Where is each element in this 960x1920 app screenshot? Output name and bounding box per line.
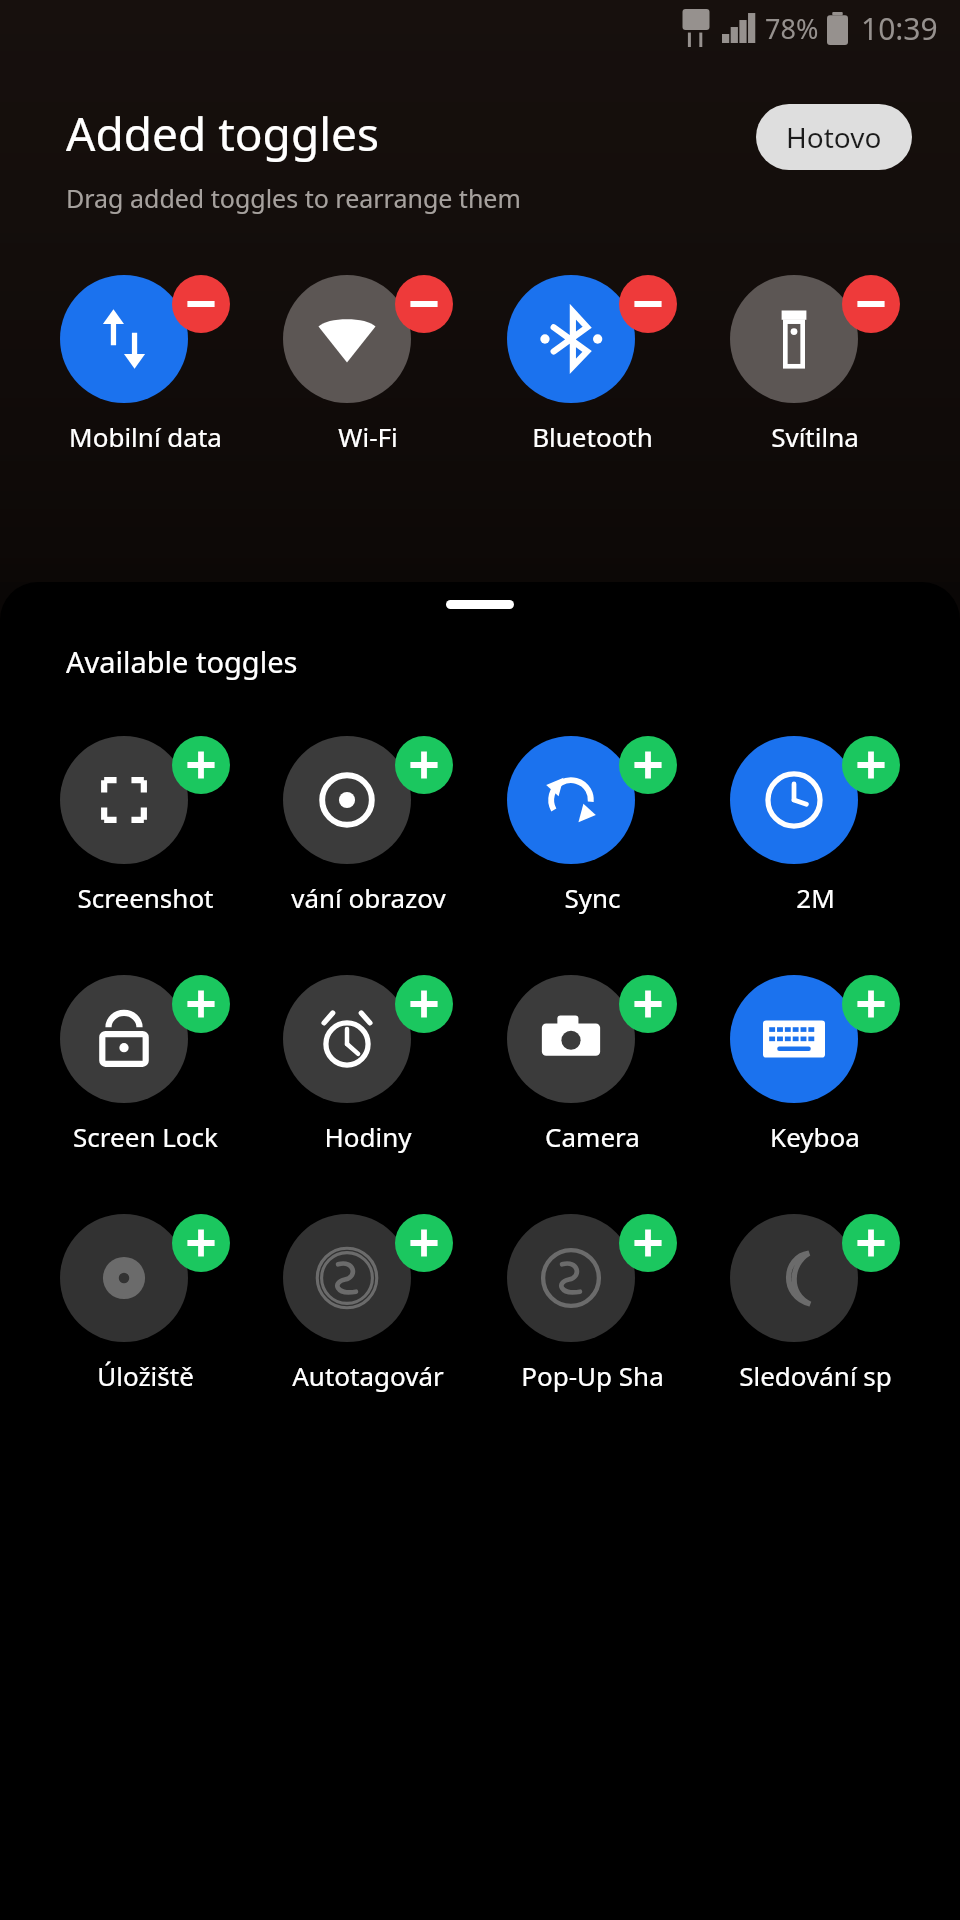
- button[interactable]: Autotagovár: [265, 1214, 471, 1393]
- button[interactable]: Add Autotagovár: [395, 1214, 453, 1272]
- staticText: 10:39: [861, 8, 938, 49]
- button[interactable]: Wi-Fi: [265, 275, 471, 454]
- button[interactable]: Add Pop-Up Sha: [619, 1214, 677, 1272]
- button[interactable]: Screen Lock: [42, 975, 248, 1154]
- button[interactable]: Add Camera: [619, 975, 677, 1033]
- staticText: Available toggles: [66, 642, 298, 681]
- staticText: Wi-Fi: [338, 419, 398, 454]
- staticText: Sync: [564, 880, 621, 915]
- button[interactable]: Keyboa: [712, 975, 918, 1154]
- button[interactable]: Add Screen Lock: [172, 975, 230, 1033]
- staticText: Screen Lock: [73, 1119, 218, 1154]
- staticText: Keyboa: [770, 1119, 860, 1154]
- staticText: Added toggles: [66, 102, 380, 165]
- staticText: vání obrazov: [291, 880, 446, 915]
- staticText: Sledování sp: [739, 1358, 892, 1393]
- button[interactable]: Svítilna: [712, 275, 918, 454]
- button[interactable]: Add Úložiště: [172, 1214, 230, 1272]
- button[interactable]: Pop-Up Sha: [489, 1214, 695, 1393]
- staticText: Hotovo: [786, 118, 882, 156]
- button[interactable]: Add 2M: [842, 736, 900, 794]
- button[interactable]: Add Hodiny: [395, 975, 453, 1033]
- button[interactable]: Add vání obrazov: [395, 736, 453, 794]
- button[interactable]: Add Sledování sp: [842, 1214, 900, 1272]
- button[interactable]: Sledování sp: [712, 1214, 918, 1393]
- staticText: Mobilní data: [69, 419, 222, 454]
- button[interactable]: Mobilní data: [42, 275, 248, 454]
- button[interactable]: Remove Wi-Fi: [395, 275, 453, 333]
- button[interactable]: Screenshot: [42, 736, 248, 915]
- button[interactable]: Sync: [489, 736, 695, 915]
- button[interactable]: 2M: [712, 736, 918, 915]
- staticText: Camera: [545, 1119, 640, 1154]
- button[interactable]: Add Keyboa: [842, 975, 900, 1033]
- button[interactable]: Hotovo: [756, 104, 912, 170]
- staticText: Svítilna: [771, 419, 859, 454]
- staticText: Autotagovár: [292, 1358, 444, 1393]
- staticText: Pop-Up Sha: [521, 1358, 664, 1393]
- staticText: Hodiny: [324, 1119, 412, 1154]
- staticText: Úložiště: [97, 1358, 194, 1393]
- staticText: 2M: [796, 880, 835, 915]
- staticText: 78%: [765, 10, 819, 47]
- button[interactable]: Bluetooth: [489, 275, 695, 454]
- button[interactable]: vání obrazov: [265, 736, 471, 915]
- button[interactable]: Remove Bluetooth: [619, 275, 677, 333]
- button[interactable]: Add Screenshot: [172, 736, 230, 794]
- staticText: Bluetooth: [532, 419, 653, 454]
- button[interactable]: Úložiště: [42, 1214, 248, 1393]
- button[interactable]: Remove Svítilna: [842, 275, 900, 333]
- staticText: Screenshot: [77, 880, 214, 915]
- button[interactable]: Camera: [489, 975, 695, 1154]
- button[interactable]: Hodiny: [265, 975, 471, 1154]
- button[interactable]: Add Sync: [619, 736, 677, 794]
- staticText: Drag added toggles to rearrange them: [66, 181, 521, 215]
- button[interactable]: Remove Mobilní data: [172, 275, 230, 333]
